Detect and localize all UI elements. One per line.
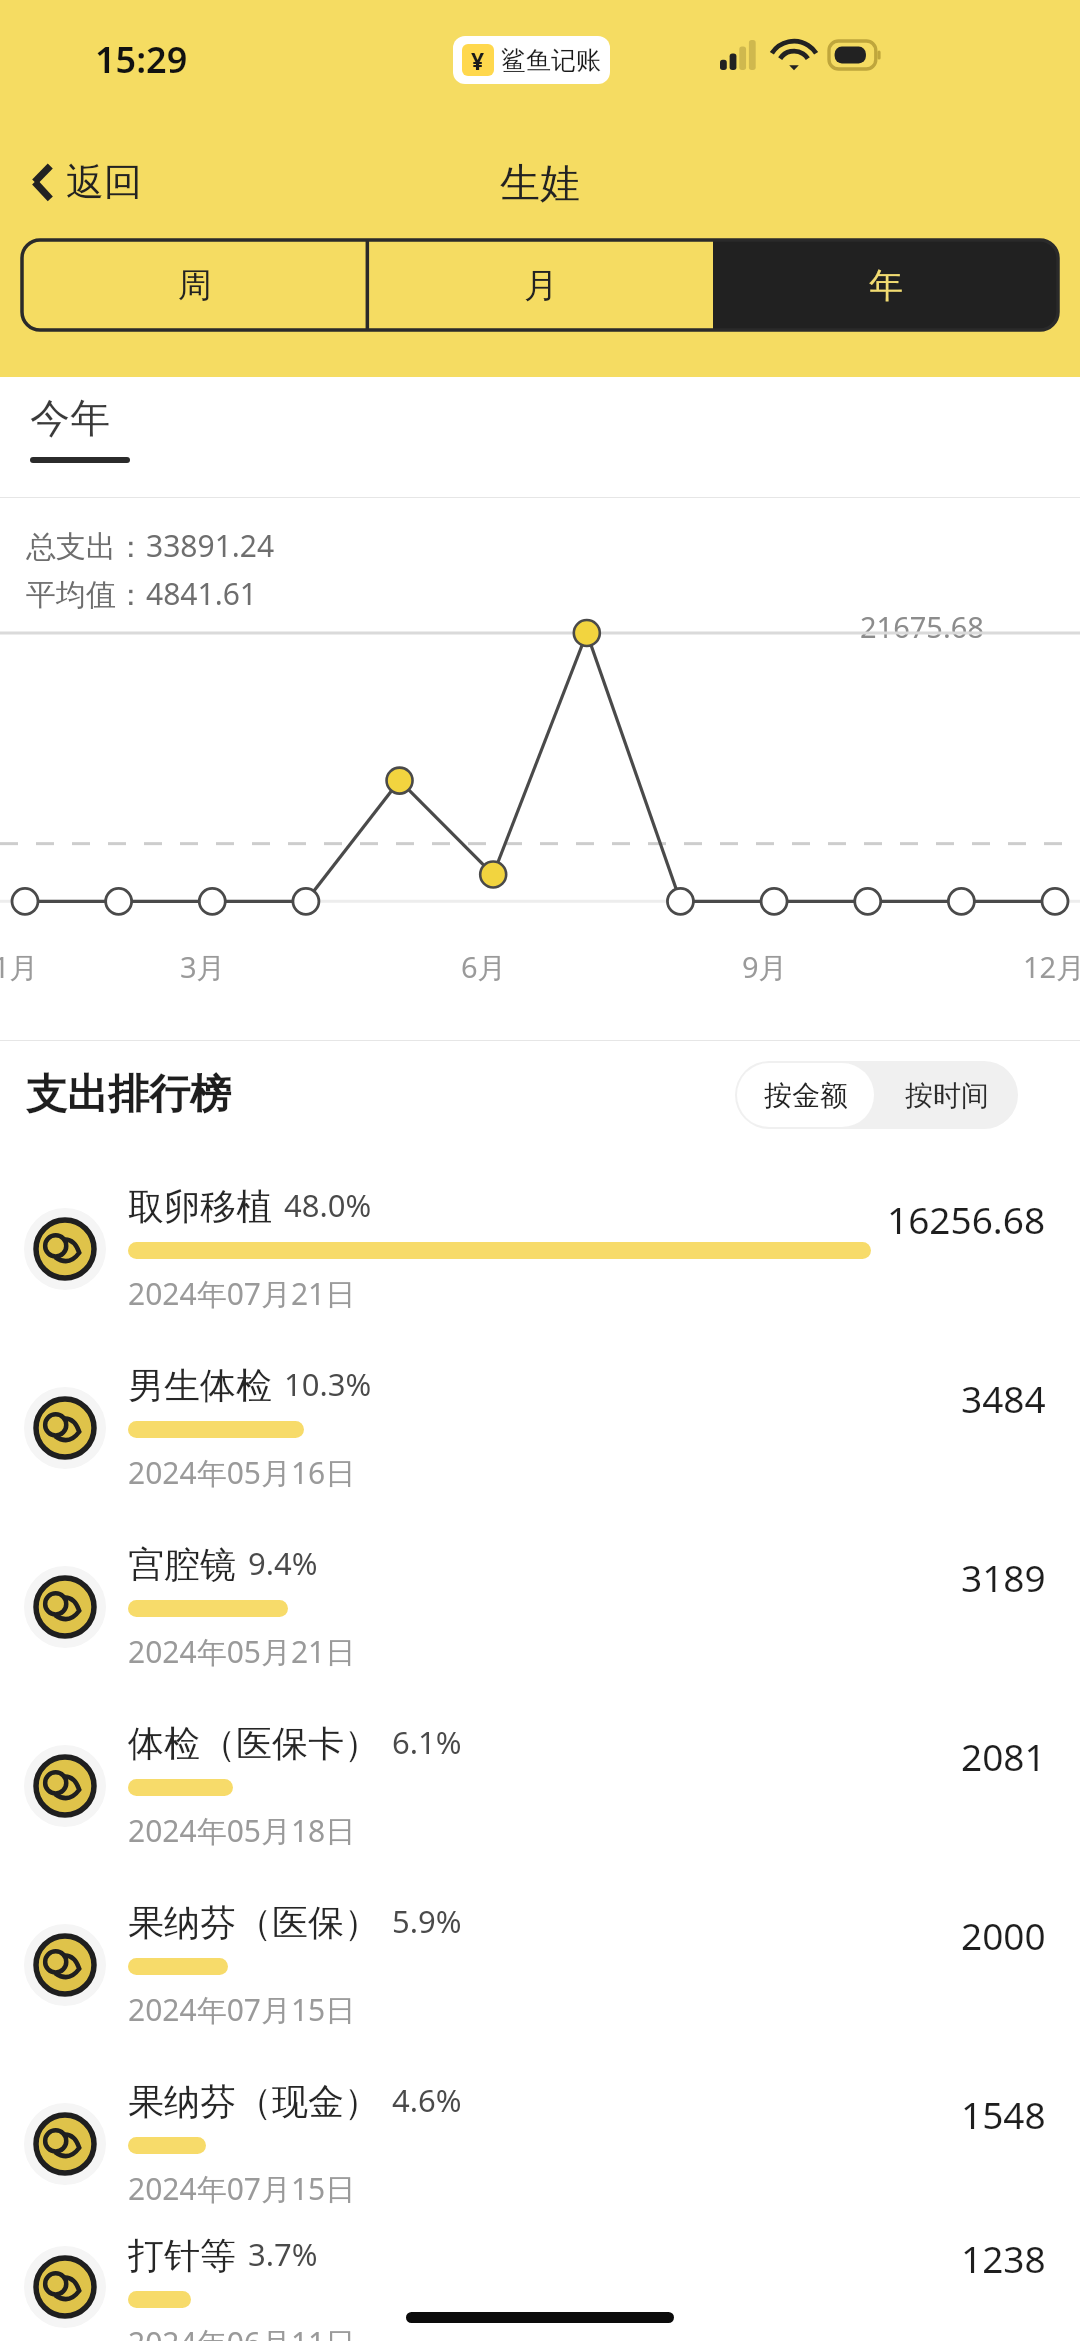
staticText: 体检（医保卡） xyxy=(128,1721,380,1766)
staticText: 果纳芬（医保） xyxy=(128,1900,380,1945)
staticText: 支出排行榜 xyxy=(26,1069,231,1121)
button[interactable]: 分类图标 xyxy=(0,2054,1080,2233)
button[interactable]: ¥ xyxy=(453,36,610,84)
button[interactable]: 按金额 xyxy=(737,1063,874,1127)
staticText: 年 xyxy=(869,264,903,307)
staticText: 6月 xyxy=(461,947,507,987)
staticText: 10.3% xyxy=(284,1363,372,1405)
button[interactable]: 分类图标 xyxy=(0,1875,1080,2054)
other: 分类图标 xyxy=(24,1924,106,2006)
staticText: 6.1% xyxy=(392,1721,462,1763)
staticText: 按时间 xyxy=(905,1078,989,1113)
staticText: 9.4% xyxy=(248,1542,318,1584)
staticText: 宫腔镜 xyxy=(128,1542,236,1587)
staticText: 21675.68 xyxy=(860,607,984,646)
button[interactable]: 返回 xyxy=(22,152,150,212)
staticText: 周 xyxy=(178,264,212,307)
staticText: 4.6% xyxy=(392,2079,462,2121)
staticText: 3189 xyxy=(961,1552,1046,1602)
button[interactable]: 周 xyxy=(22,240,368,330)
button[interactable]: 今年 xyxy=(22,389,138,467)
staticText: 生娃 xyxy=(0,158,1080,208)
staticText: 总支出：33891.24 xyxy=(26,525,275,566)
button[interactable]: 按时间 xyxy=(876,1061,1018,1129)
staticText: 2024年06月11日 xyxy=(128,2322,356,2341)
staticText: 12月 xyxy=(1023,947,1080,987)
staticText: 按金额 xyxy=(764,1078,848,1113)
staticText: 3月 xyxy=(180,947,226,987)
staticText: 9月 xyxy=(742,947,788,987)
staticText: 鲨鱼记账 xyxy=(501,45,601,76)
button[interactable]: 分类图标 xyxy=(0,1517,1080,1696)
other: 分类图标 xyxy=(24,1208,106,1290)
staticText: 3484 xyxy=(961,1373,1046,1423)
staticText: 1548 xyxy=(961,2089,1046,2139)
button[interactable]: 分类图标 xyxy=(0,2233,1080,2341)
staticText: 48.0% xyxy=(284,1184,372,1226)
staticText: ¥ xyxy=(471,45,485,76)
staticText: 1238 xyxy=(961,2233,1046,2283)
staticText: 2000 xyxy=(961,1910,1046,1960)
staticText: 2081 xyxy=(961,1731,1046,1781)
staticText: 3.7% xyxy=(248,2233,318,2275)
staticText: 2024年07月15日 xyxy=(128,2168,356,2209)
staticText: 2024年07月21日 xyxy=(128,1273,356,1314)
staticText: 5.9% xyxy=(392,1900,462,1942)
staticText: 今年 xyxy=(30,393,110,443)
other: 分类图标 xyxy=(24,1745,106,1827)
staticText: 15:29 xyxy=(95,35,188,84)
staticText: 2024年05月21日 xyxy=(128,1631,356,1672)
staticText: 果纳芬（现金） xyxy=(128,2079,380,2124)
button[interactable]: 年 xyxy=(713,240,1058,330)
staticText: 男生体检 xyxy=(128,1363,272,1408)
button[interactable]: 分类图标 xyxy=(0,1696,1080,1875)
other: 分类图标 xyxy=(24,2103,106,2185)
staticText: 2024年07月15日 xyxy=(128,1989,356,2030)
other: 分类图标 xyxy=(24,1566,106,1648)
staticText: 取卵移植 xyxy=(128,1184,272,1229)
button[interactable]: 分类图标 xyxy=(0,1338,1080,1517)
other: 分类图标 xyxy=(24,1387,106,1469)
staticText: 平均值：4841.61 xyxy=(26,573,257,614)
staticText: 打针等 xyxy=(128,2233,236,2278)
staticText: 月 xyxy=(524,264,558,307)
staticText: 2024年05月18日 xyxy=(128,1810,356,1851)
button[interactable]: 分类图标 xyxy=(0,1159,1080,1338)
button[interactable]: 月 xyxy=(368,240,713,330)
other: 分类图标 xyxy=(24,2246,106,2328)
staticText: 16256.68 xyxy=(887,1194,1046,1244)
staticText: 2024年05月16日 xyxy=(128,1452,356,1493)
staticText: 1月 xyxy=(0,947,39,987)
staticText: 返回 xyxy=(66,158,142,206)
